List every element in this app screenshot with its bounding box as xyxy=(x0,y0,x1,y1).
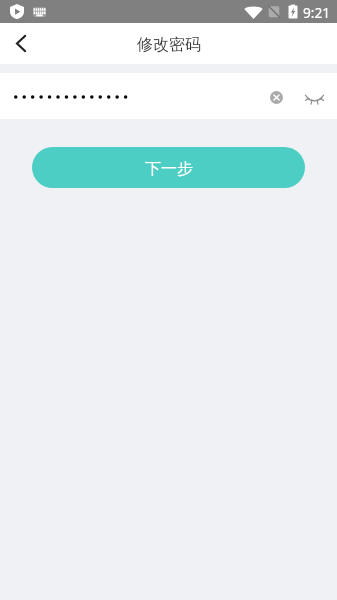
button[interactable]: Clear xyxy=(261,81,291,111)
button[interactable]: Clear xyxy=(0,73,337,119)
staticText: 9:21 xyxy=(303,3,331,22)
button[interactable]: Back xyxy=(0,23,42,64)
staticText: 下一步 xyxy=(145,159,193,179)
button[interactable]: 下一步 xyxy=(32,147,305,188)
button[interactable]: Show password xyxy=(300,81,330,111)
staticText: 修改密码 xyxy=(137,35,201,55)
